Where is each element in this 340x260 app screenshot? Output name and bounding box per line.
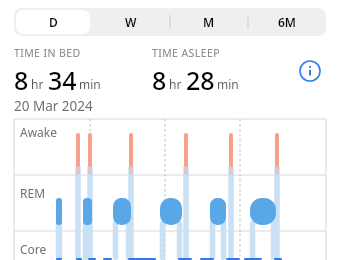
button[interactable]: Info <box>299 60 321 82</box>
button[interactable]: M <box>172 10 246 34</box>
staticText: D <box>49 14 58 30</box>
staticText: TIME ASLEEP <box>152 46 220 60</box>
staticText: 6M <box>278 14 297 30</box>
button[interactable]: Awake <box>0 119 340 260</box>
staticText: 8 <box>152 63 167 94</box>
staticText: Core <box>20 241 47 257</box>
button[interactable]: W <box>94 10 168 34</box>
staticText: TIME IN BED <box>14 46 81 60</box>
staticText: 28 <box>186 63 215 94</box>
staticText: min <box>79 76 101 92</box>
staticText: Awake <box>20 124 58 140</box>
staticText: 34 <box>48 63 77 94</box>
staticText: REM <box>20 185 46 201</box>
staticText: W <box>125 14 137 30</box>
staticText: M <box>203 14 215 30</box>
staticText: min <box>217 76 239 92</box>
button[interactable]: D <box>16 10 90 34</box>
staticText: hr <box>31 76 44 92</box>
button[interactable]: 6M <box>250 10 324 34</box>
staticText: 8 <box>14 63 29 94</box>
staticText: hr <box>169 76 182 92</box>
staticText: 20 Mar 2024 <box>14 97 93 115</box>
